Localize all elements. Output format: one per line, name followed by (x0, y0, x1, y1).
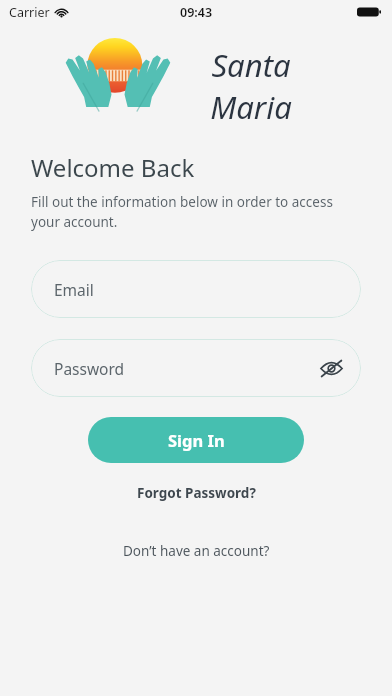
staticText: Forgot Password? (137, 484, 256, 502)
button[interactable]: Show password (314, 353, 349, 384)
button[interactable]: Forgot Password? (127, 479, 266, 507)
staticText: Carrier (9, 4, 50, 21)
staticText: Password (54, 358, 125, 379)
staticText: 09:43 (180, 4, 213, 21)
staticText: Don’t have an account? (123, 542, 270, 560)
staticText: Welcome Back (31, 151, 195, 184)
button[interactable]: Sign In (88, 417, 304, 463)
button[interactable]: Password (31, 339, 361, 397)
staticText: Fill out the information below in order … (31, 193, 352, 231)
staticText: Email (54, 279, 94, 300)
button[interactable]: Don’t have an account? (113, 537, 280, 565)
staticText: Sign In (168, 429, 225, 451)
button[interactable]: Email (31, 260, 361, 318)
staticText: Santa Maria (170, 44, 332, 128)
